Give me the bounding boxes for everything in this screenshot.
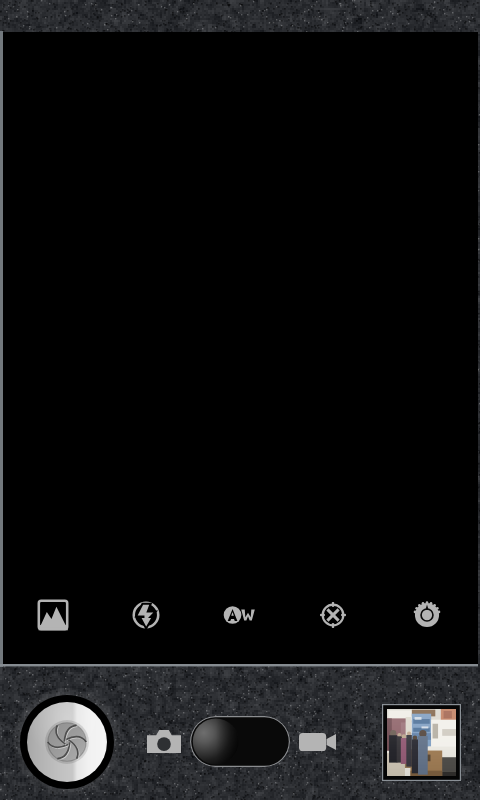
- button[interactable]: Photo mode: [147, 729, 181, 753]
- button[interactable]: Switch camera mode: [190, 716, 290, 767]
- button[interactable]: Flash off: [99, 589, 192, 641]
- button[interactable]: Last photo: [382, 704, 461, 781]
- button[interactable]: Video mode: [299, 733, 336, 751]
- button[interactable]: Location off: [286, 589, 380, 641]
- button[interactable]: Auto white balance: [192, 589, 286, 641]
- button[interactable]: Settings: [380, 589, 474, 641]
- button[interactable]: Shutter: [13, 688, 121, 796]
- button[interactable]: Gallery: [6, 589, 99, 641]
